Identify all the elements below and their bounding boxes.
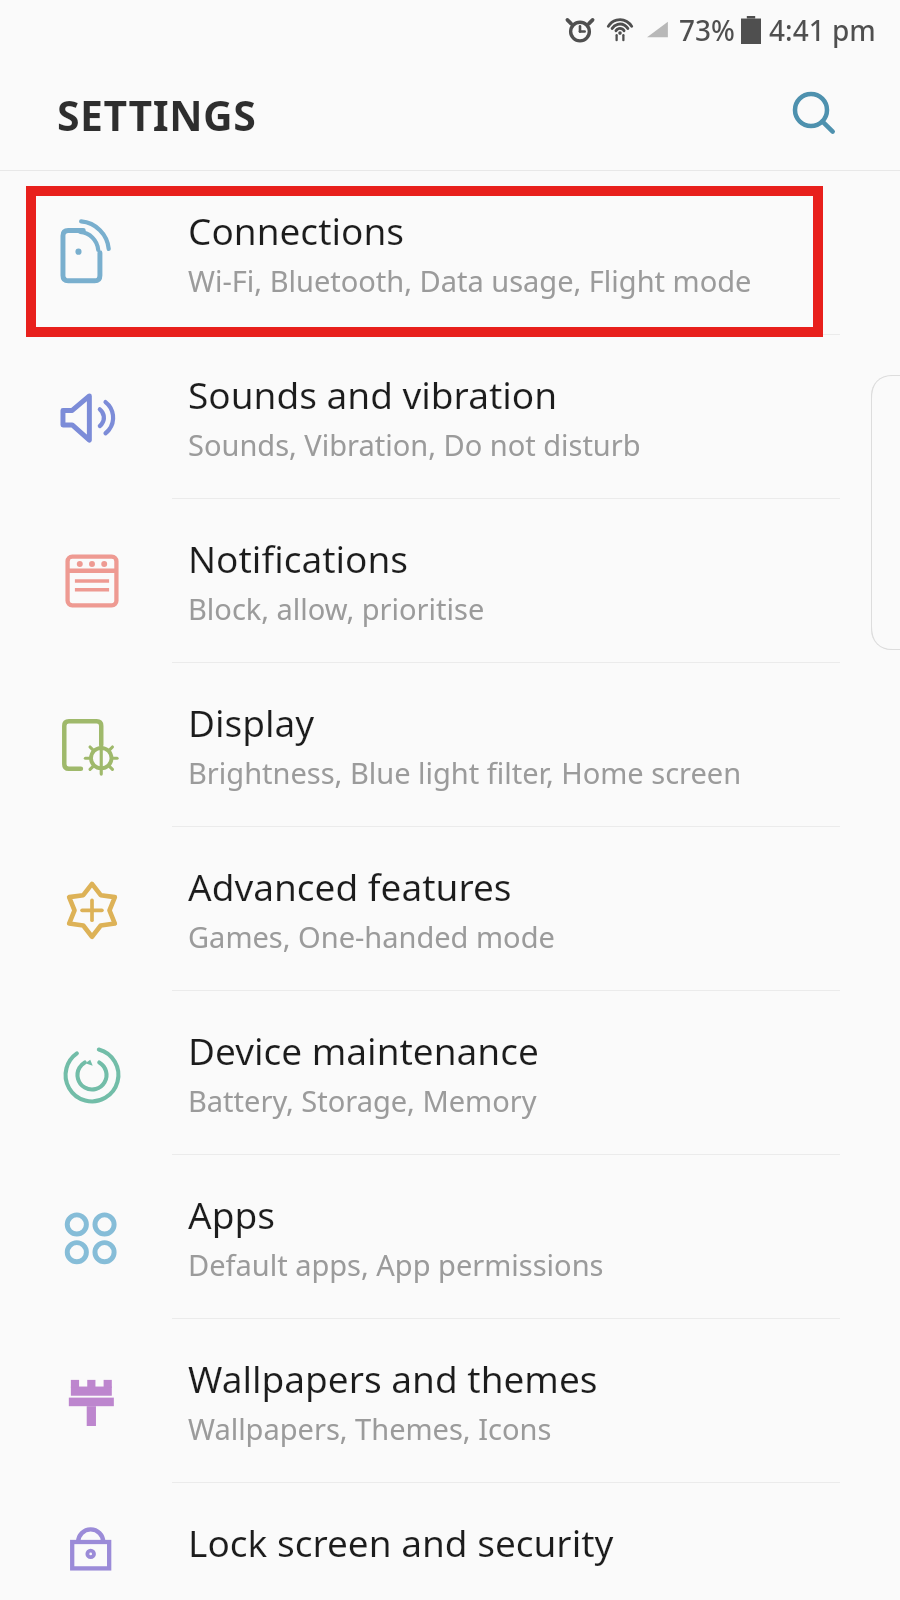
button[interactable]: Lock screen and security	[0, 1483, 900, 1600]
staticText: Sounds, Vibration, Do not disturb	[188, 425, 641, 464]
staticText: Sounds and vibration	[188, 369, 558, 419]
staticText: Advanced features	[188, 861, 512, 911]
button[interactable]: Advanced features	[0, 827, 900, 990]
button[interactable]: Connections	[0, 171, 900, 334]
staticText: Device maintenance	[188, 1025, 539, 1075]
staticText: SETTINGS	[57, 87, 257, 143]
button[interactable]: Display	[0, 663, 900, 826]
staticText: 73%	[679, 11, 735, 49]
staticText: Block, allow, prioritise	[188, 589, 485, 628]
staticText: Games, One-handed mode	[188, 917, 555, 956]
staticText: Lock screen and security	[188, 1517, 614, 1567]
staticText: Wallpapers and themes	[188, 1353, 598, 1403]
button[interactable]: Notifications	[0, 499, 900, 662]
staticText: Brightness, Blue light filter, Home scre…	[188, 753, 742, 792]
staticText: Default apps, App permissions	[188, 1245, 604, 1284]
button[interactable]: Sounds and vibration	[0, 335, 900, 498]
staticText: 4:41 pm	[769, 11, 876, 49]
staticText: Display	[188, 697, 315, 747]
button[interactable]: Apps	[0, 1155, 900, 1318]
staticText: Apps	[188, 1189, 275, 1239]
staticText: Wallpapers, Themes, Icons	[188, 1409, 552, 1448]
staticText: Battery, Storage, Memory	[188, 1081, 537, 1120]
button[interactable]: Search	[785, 85, 845, 145]
staticText: Connections	[188, 205, 405, 255]
button[interactable]: Device maintenance	[0, 991, 900, 1154]
button[interactable]: Wallpapers and themes	[0, 1319, 900, 1482]
staticText: Wi-Fi, Bluetooth, Data usage, Flight mod…	[188, 261, 752, 300]
staticText: Notifications	[188, 533, 409, 583]
